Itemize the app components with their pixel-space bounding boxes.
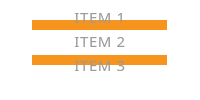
staticText: ITEM 2 [74, 31, 126, 51]
button[interactable]: ITEM 3 [32, 55, 167, 75]
staticText: ITEM 3 [74, 55, 126, 75]
button[interactable]: Progress bar [32, 55, 167, 65]
staticText: ITEM 1 [74, 7, 126, 27]
button[interactable]: ITEM 2 [32, 31, 167, 51]
button[interactable]: ITEM 1 [32, 7, 167, 27]
button[interactable]: Progress bar [32, 20, 167, 30]
